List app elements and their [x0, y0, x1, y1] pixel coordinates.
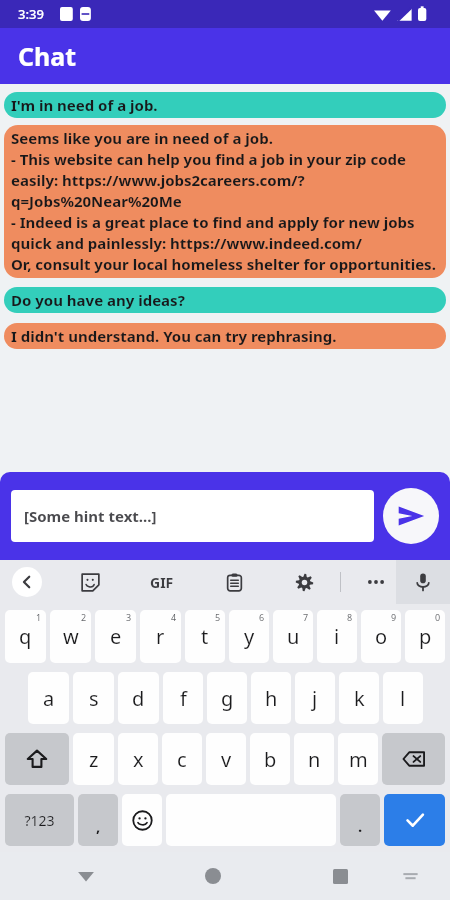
staticText: v [221, 746, 232, 773]
staticText: s [89, 685, 99, 712]
staticText: l [400, 685, 406, 712]
button[interactable]: Stickers [76, 568, 104, 596]
button[interactable]: Back [12, 567, 42, 597]
button[interactable]: l [383, 672, 423, 724]
button[interactable]: m [338, 733, 378, 785]
staticText: u [287, 623, 300, 650]
button[interactable]: c [162, 733, 202, 785]
staticText: 8 [347, 611, 353, 623]
button[interactable]: . [340, 794, 380, 846]
staticText: 3 [126, 611, 132, 623]
button[interactable]: y [229, 610, 269, 663]
button[interactable]: Backspace [382, 733, 445, 785]
button[interactable]: e [95, 610, 136, 663]
button[interactable]: Recents [320, 856, 360, 896]
staticText: c [177, 746, 187, 773]
staticText: 6 [259, 611, 265, 623]
button[interactable]: f [163, 672, 203, 724]
staticText: z [89, 746, 99, 773]
button[interactable]: Back [66, 856, 106, 896]
button[interactable]: b [250, 733, 290, 785]
staticText: h [265, 685, 278, 712]
button[interactable]: n [294, 733, 334, 785]
staticText: Seems like you are in need of a job. - T… [11, 128, 439, 275]
staticText: 3:39 [18, 5, 44, 23]
button[interactable]: GIF [146, 569, 178, 596]
staticText: j [312, 685, 318, 712]
button[interactable]: More [363, 569, 389, 595]
staticText: y [244, 623, 255, 650]
button[interactable]: v [206, 733, 246, 785]
button[interactable]: Settings [290, 568, 318, 596]
button[interactable]: Emoji [122, 794, 162, 846]
staticText: . [358, 816, 363, 836]
staticText: n [308, 746, 321, 773]
staticText: r [156, 623, 165, 650]
staticText: m [349, 746, 368, 773]
button[interactable]: o [361, 610, 401, 663]
staticText: t [201, 623, 209, 650]
button[interactable]: x [118, 733, 158, 785]
staticText: 2 [81, 611, 87, 623]
button[interactable]: Enter [384, 794, 445, 846]
staticText: f [180, 685, 187, 712]
staticText: a [43, 685, 55, 712]
button[interactable]: Clipboard [220, 568, 248, 596]
staticText: g [221, 685, 234, 712]
staticText: Chat [18, 39, 77, 73]
button[interactable]: k [339, 672, 379, 724]
button[interactable]: a [28, 672, 69, 724]
button[interactable]: ?123 [5, 794, 74, 846]
button[interactable]: u [273, 610, 313, 663]
button[interactable]: [Some hint text...] [11, 490, 374, 542]
button[interactable]: Hide keyboard [390, 856, 430, 896]
staticText: 5 [215, 611, 221, 623]
button[interactable]: Home [193, 856, 233, 896]
staticText: [Some hint text...] [24, 506, 157, 526]
staticText: k [354, 685, 365, 712]
staticText: ?123 [24, 811, 55, 830]
staticText: q [19, 623, 32, 650]
staticText: b [264, 746, 277, 773]
staticText: o [375, 623, 388, 650]
staticText: e [110, 623, 122, 650]
staticText: 1 [36, 611, 42, 623]
button[interactable]: r [140, 610, 181, 663]
button[interactable]: Seems like you are in need of a job. - T… [4, 125, 446, 278]
button[interactable]: w [50, 610, 91, 663]
button[interactable]: s [73, 672, 114, 724]
button[interactable]: p [405, 610, 445, 663]
staticText: i [334, 623, 340, 650]
button[interactable]: I didn't understand. You can try rephras… [4, 323, 446, 349]
button[interactable]: Do you have any ideas? [4, 287, 446, 313]
staticText: p [419, 623, 432, 650]
button[interactable]: Voice input [396, 560, 450, 604]
button[interactable]: z [73, 733, 114, 785]
button[interactable]: d [118, 672, 159, 724]
staticText: x [133, 746, 144, 773]
button[interactable]: q [5, 610, 46, 663]
staticText: , [96, 816, 101, 836]
staticText: 4 [171, 611, 177, 623]
button[interactable]: Shift [5, 733, 69, 785]
staticText: d [132, 685, 145, 712]
button[interactable]: i [317, 610, 357, 663]
staticText: 0 [435, 611, 441, 623]
staticText: I'm in need of a job. [11, 95, 158, 115]
button[interactable]: g [207, 672, 247, 724]
button[interactable]: Send [383, 488, 439, 544]
staticText: Do you have any ideas? [11, 290, 185, 310]
button[interactable]: I'm in need of a job. [4, 92, 446, 118]
staticText: GIF [150, 573, 174, 592]
staticText: w [63, 623, 79, 650]
staticText: 7 [303, 611, 309, 623]
staticText: I didn't understand. You can try rephras… [11, 326, 337, 346]
button[interactable]: h [251, 672, 291, 724]
button[interactable]: j [295, 672, 335, 724]
button[interactable]: , [78, 794, 118, 846]
staticText: 9 [391, 611, 397, 623]
button[interactable]: t [185, 610, 225, 663]
